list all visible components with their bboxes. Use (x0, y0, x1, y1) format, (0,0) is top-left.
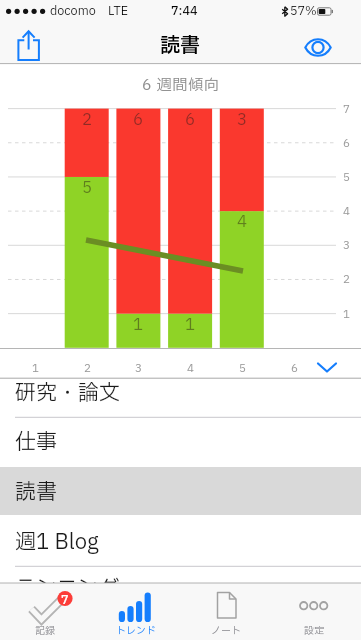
staticText: 3 (237, 108, 248, 130)
staticText: 6 週間傾向 (142, 74, 220, 96)
button[interactable] (0, 418, 361, 467)
staticText: 1 (133, 313, 144, 335)
staticText: 週1 Blog (15, 527, 99, 558)
staticText: 2 (84, 360, 91, 377)
staticText: 5 (82, 176, 93, 198)
staticText: 1 (343, 306, 350, 323)
button[interactable] (0, 584, 90, 640)
staticText: 7 (343, 101, 350, 118)
button[interactable] (8, 26, 48, 64)
staticText: 7 (61, 591, 69, 607)
button[interactable] (0, 467, 361, 515)
staticText: docomo (50, 2, 96, 20)
staticText: 記録 (35, 623, 55, 638)
staticText: 2 (82, 108, 93, 130)
staticText: ノート (211, 623, 241, 638)
staticText: 1 (32, 360, 39, 377)
button[interactable] (312, 356, 344, 378)
staticText: 6 (291, 360, 298, 377)
staticText: 4 (187, 360, 194, 377)
staticText: 4 (343, 203, 350, 220)
staticText: 1 (185, 313, 196, 335)
staticText: 研究・論文 (15, 378, 120, 409)
staticText: LTE (108, 2, 128, 20)
button[interactable] (90, 584, 180, 640)
staticText: 設定 (304, 623, 324, 638)
staticText: 5 (343, 169, 350, 186)
button[interactable] (0, 566, 361, 583)
staticText: 6 (133, 108, 144, 130)
button[interactable] (180, 584, 270, 640)
staticText: 仕事 (15, 427, 57, 458)
staticText: トレンド (116, 623, 156, 638)
staticText: 2 (343, 271, 350, 288)
staticText: 3 (343, 237, 350, 254)
button[interactable] (270, 584, 361, 640)
staticText: 読書 (160, 31, 200, 61)
staticText: 7:44 (171, 2, 198, 20)
staticText: 6 (343, 135, 350, 152)
staticText: 4 (237, 210, 248, 232)
button[interactable] (0, 515, 361, 566)
staticText: 6 (185, 108, 196, 130)
staticText: 3 (135, 360, 142, 377)
staticText: 読書 (15, 477, 57, 508)
staticText: 57% (290, 2, 317, 20)
button[interactable] (298, 28, 342, 64)
staticText: ランニング (15, 573, 120, 604)
staticText: 5 (239, 360, 246, 377)
button[interactable] (0, 379, 361, 417)
